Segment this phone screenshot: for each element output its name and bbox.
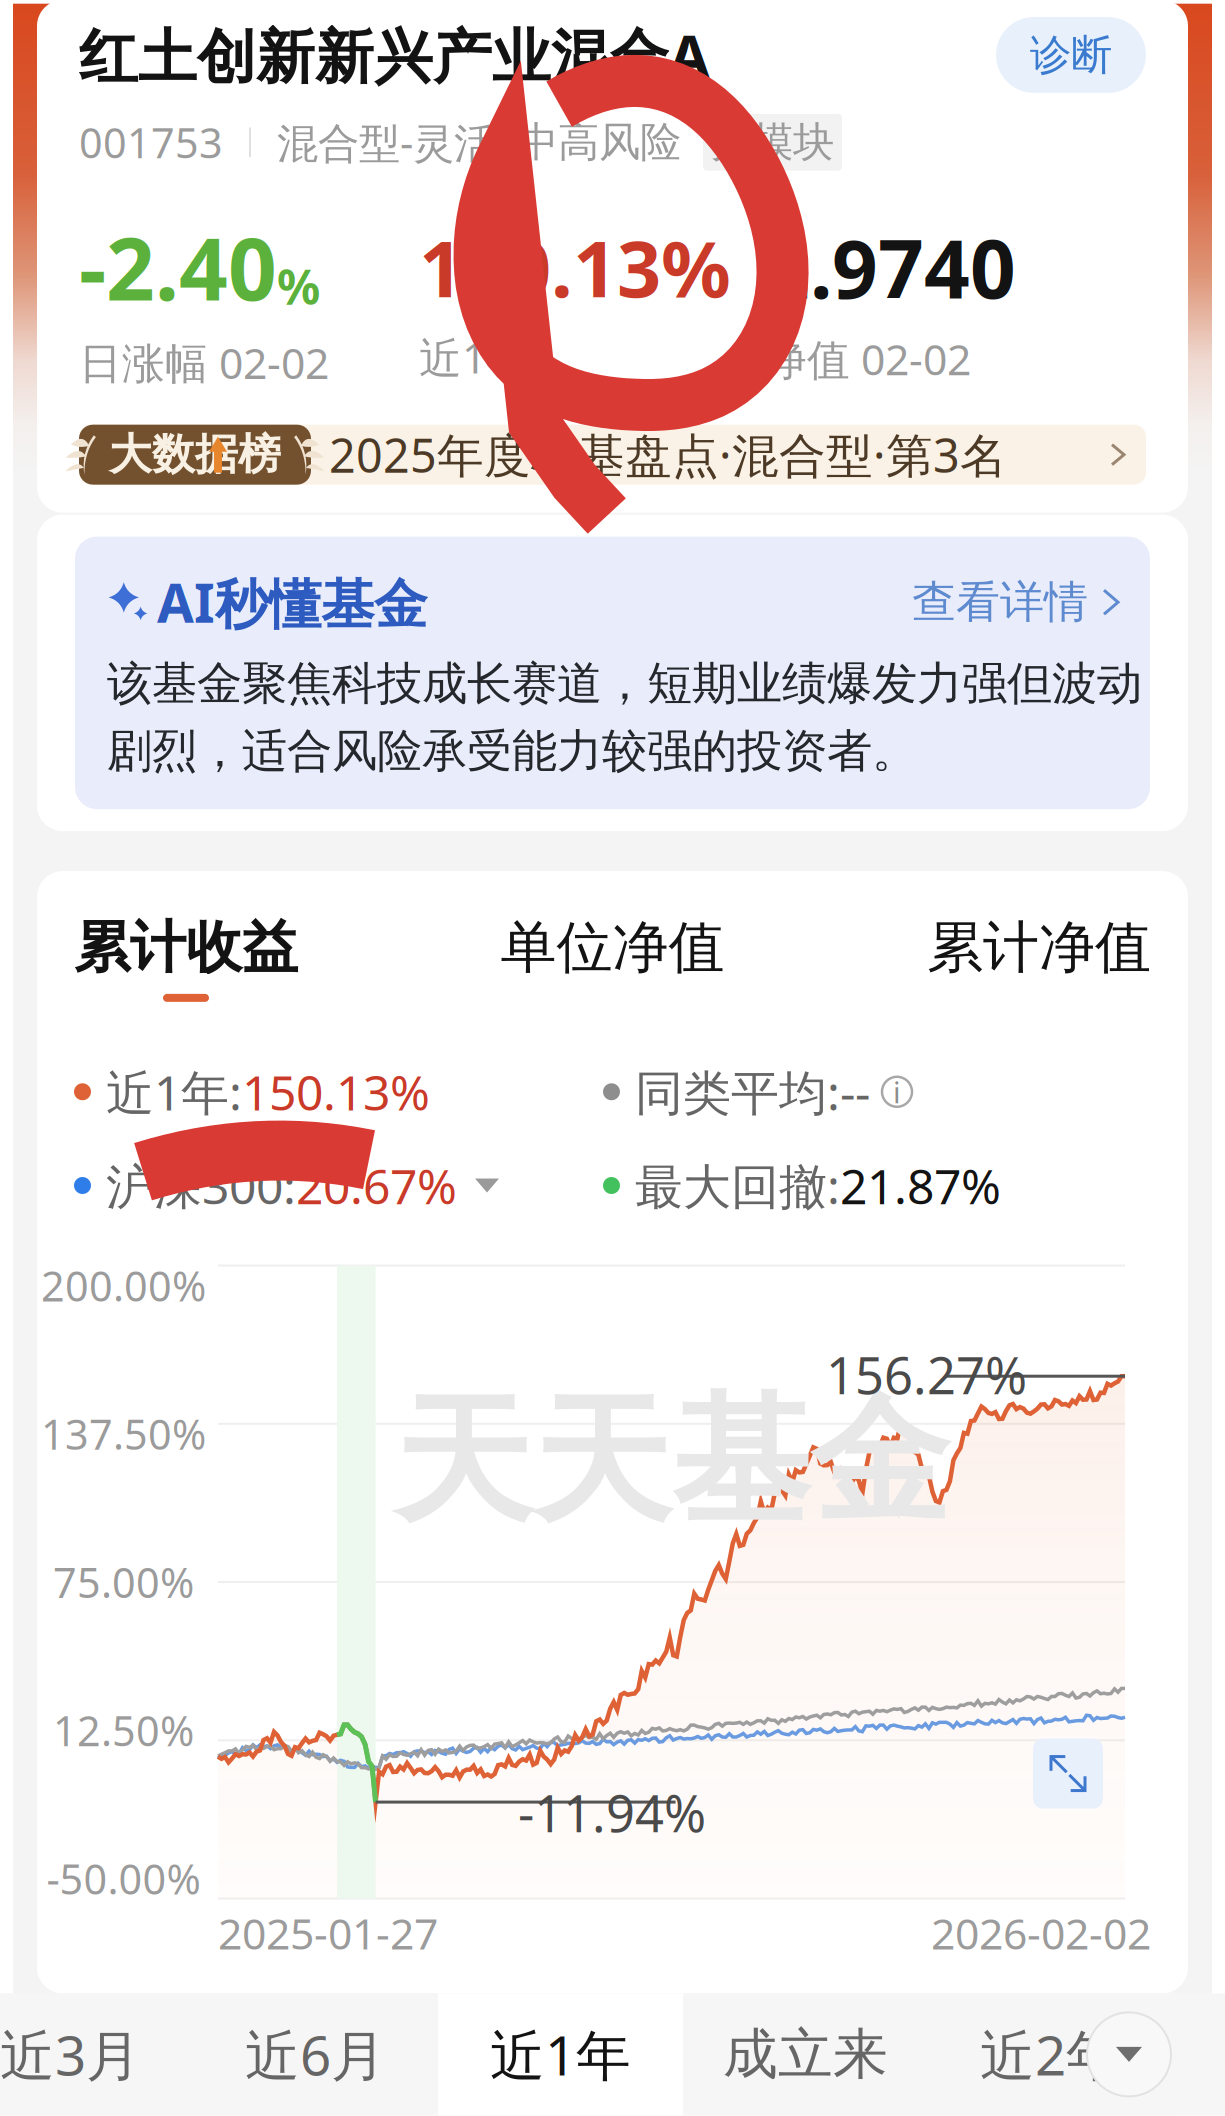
staticText: 001753 [79,115,223,170]
staticText: 该基金聚焦科技成长赛道，短期业绩爆发力强但波动 [107,656,1142,711]
staticText: 中高风险 [517,117,681,168]
staticText: 近6月 [245,2018,386,2091]
staticText: 大数据榜 [109,428,281,481]
staticText: 同类平均: [635,1060,840,1124]
staticText: 最大回撤: [635,1154,840,1217]
staticText: 近1年 [419,329,529,385]
staticText: 2026-02-02 [931,1905,1151,1961]
staticText: 近2年 [980,2018,1121,2091]
staticText: 成立来 [723,2021,888,2088]
staticText: 20.67% [296,1154,457,1217]
staticText: 天天基金 [393,1377,949,1547]
staticText: 查看详情 [912,575,1088,629]
staticText: AI秒懂基金 [157,567,427,638]
staticText: % [277,254,320,318]
staticText: 137.50% [41,1406,206,1461]
staticText: 光模块 [711,117,834,168]
button[interactable]: 近2年 [928,1993,1173,2115]
staticText: 剧烈，适合风险承受能力较强的投资者。 [107,723,917,779]
staticText: -- [840,1060,870,1124]
staticText: -2.40 [79,211,277,324]
button[interactable]: More ranges [1087,2012,1171,2096]
button[interactable]: 成立来 [683,1993,928,2115]
button[interactable]: 大数据榜 [79,425,1146,485]
staticText: 200.00% [41,1258,206,1313]
staticText: 近1年: [106,1060,242,1124]
button[interactable]: 近6月 [193,1993,438,2115]
button[interactable]: 诊断 [996,17,1146,93]
staticText: 沪深300: [106,1154,296,1217]
staticText: -11.94% [518,1779,706,1846]
staticText: 2025-01-27 [218,1905,438,1961]
staticText: i [893,1072,901,1111]
staticText: 单位净值 [500,913,724,982]
staticText: 156.27% [826,1341,1027,1408]
staticText: 21.87% [840,1154,1001,1217]
staticText: 累计收益 [74,913,298,982]
staticText: 12.50% [53,1703,194,1758]
staticText: 日涨幅 02-02 [79,334,329,391]
staticText: 150.13% [242,1060,430,1124]
staticText: 2.9740 [764,214,1016,320]
button[interactable]: AI秒懂基金 [75,537,1150,809]
staticText: 近3月 [0,2018,141,2091]
button[interactable]: 单位净值 [500,913,724,1002]
staticText: 红土创新新兴产业混合A [79,16,710,94]
button[interactable]: Expand chart [1033,1739,1103,1809]
button[interactable]: 近1年 [438,1993,683,2115]
button[interactable]: 近3月 [0,1993,193,2115]
staticText: 累计净值 [927,913,1151,982]
staticText: 近1年 [490,2018,631,2091]
staticText: 2025年度权基盘点·混合型·第3名 [329,424,1007,486]
staticText: 75.00% [53,1555,194,1609]
staticText: 净值 02-02 [764,330,971,387]
button[interactable]: 累计净值 [927,913,1151,1002]
staticText: 诊断 [1030,30,1112,80]
staticText: 150.13% [419,216,731,319]
staticText: 混合型-灵活 [277,115,495,170]
button[interactable]: 累计收益 [74,913,298,1002]
staticText: -50.00% [46,1851,200,1906]
